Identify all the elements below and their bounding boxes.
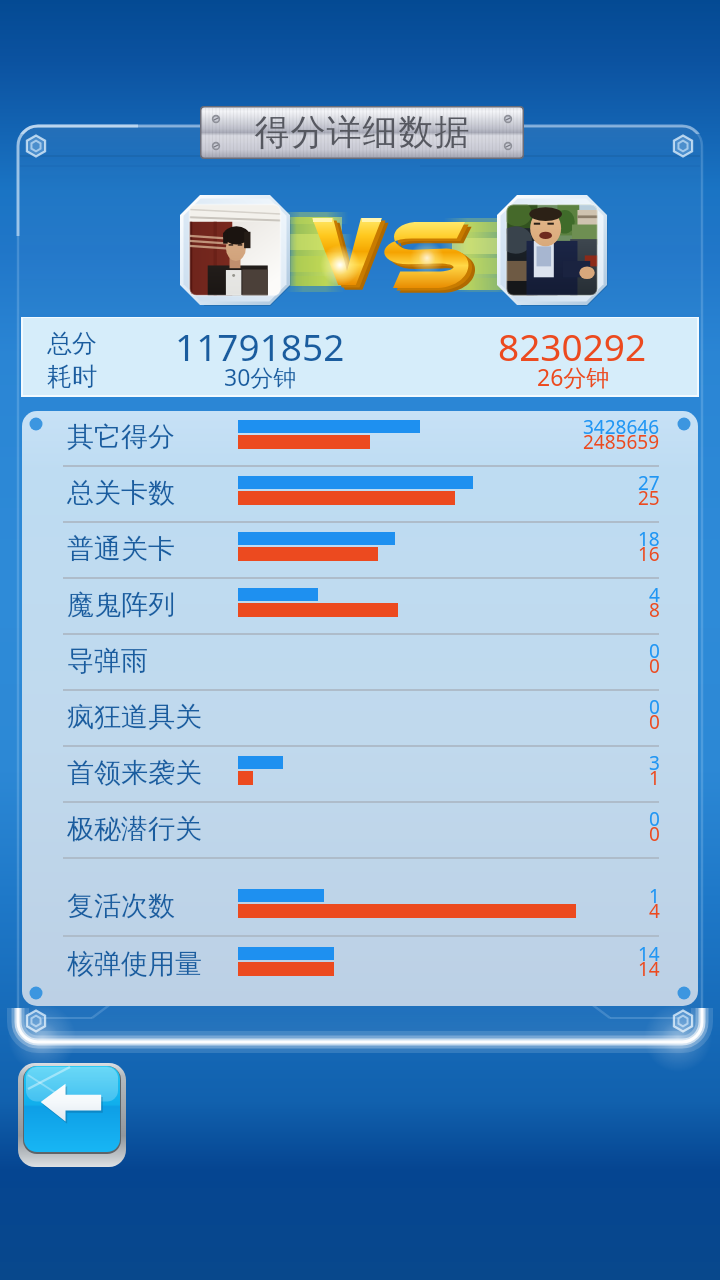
staticText: 16 (638, 541, 660, 567)
staticText: 耗时 (47, 361, 97, 392)
staticText: 30分钟 (224, 361, 297, 392)
staticText: 复活次数 (67, 889, 175, 923)
staticText: 极秘潜行关 (67, 812, 202, 846)
staticText: 3428646 (583, 414, 660, 440)
staticText: 总关卡数 (67, 476, 175, 510)
staticText: 导弹雨 (67, 644, 148, 678)
button[interactable]: Back (18, 1063, 126, 1167)
staticText: 26分钟 (537, 361, 610, 392)
staticText: 0 (649, 638, 660, 664)
staticText: 8 (649, 597, 660, 623)
staticText: 魔鬼阵列 (67, 588, 175, 622)
staticText: 3 (649, 750, 660, 776)
staticText: 2485659 (583, 429, 660, 455)
staticText: 4 (649, 582, 660, 608)
staticText: 27 (638, 470, 660, 496)
staticText: 其它得分 (67, 420, 175, 454)
staticText: 得分详细数据 (254, 110, 470, 154)
staticText: 首领来袭关 (67, 756, 202, 790)
staticText: 18 (638, 526, 660, 552)
staticText: 核弹使用量 (67, 947, 202, 981)
staticText: 0 (649, 709, 660, 735)
staticText: 0 (649, 806, 660, 832)
staticText: 0 (649, 653, 660, 679)
staticText: 1 (649, 883, 660, 909)
staticText: 0 (649, 821, 660, 847)
staticText: 普通关卡 (67, 532, 175, 566)
staticText: 11791852 (175, 321, 345, 371)
staticText: 25 (638, 485, 660, 511)
staticText: 总分 (47, 328, 97, 359)
staticText: 14 (638, 941, 660, 967)
staticText: 4 (649, 898, 660, 924)
staticText: 14 (638, 956, 660, 982)
staticText: 1 (649, 765, 660, 791)
staticText: 0 (649, 694, 660, 720)
staticText: 8230292 (498, 321, 647, 371)
staticText: 疯狂道具关 (67, 700, 202, 734)
